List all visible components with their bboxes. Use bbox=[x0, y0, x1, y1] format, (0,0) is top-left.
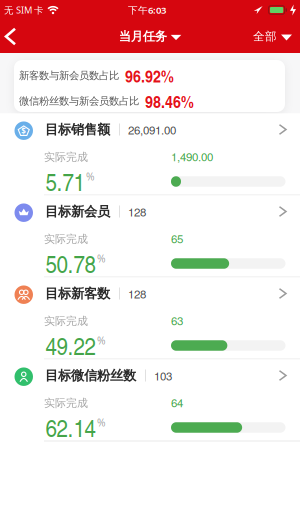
staticText: 实际完成 bbox=[44, 232, 88, 246]
staticText: 128 bbox=[128, 285, 146, 302]
staticText: 63 bbox=[171, 312, 183, 329]
staticText: 5.71 bbox=[45, 163, 84, 198]
staticText: 50.78 bbox=[45, 245, 95, 280]
staticText: 62.14 bbox=[45, 409, 95, 444]
staticText: 目标新客数 bbox=[45, 285, 110, 302]
staticText: 1,490.00 bbox=[171, 148, 213, 165]
staticText: 实际完成 bbox=[44, 314, 88, 328]
staticText: 实际完成 bbox=[44, 150, 88, 164]
staticText: 当月任务 bbox=[119, 29, 167, 44]
button[interactable]: $ bbox=[0, 113, 300, 195]
button[interactable]: 目标微信粉丝数 bbox=[0, 359, 300, 441]
staticText: 目标新会员 bbox=[45, 203, 110, 220]
staticText: 目标微信粉丝数 bbox=[45, 367, 136, 384]
staticText: 无 SIM 卡 bbox=[4, 4, 43, 16]
staticText: 64 bbox=[171, 394, 183, 411]
staticText: 微信粉丝数与新会员数占比 bbox=[19, 94, 139, 107]
staticText: 128 bbox=[128, 203, 146, 220]
button[interactable]: 全部 bbox=[253, 23, 300, 50]
staticText: 103 bbox=[154, 367, 172, 384]
button[interactable]: 目标新客数 bbox=[0, 277, 300, 359]
staticText: % bbox=[86, 169, 95, 183]
staticText: 下午6:03 bbox=[128, 3, 166, 17]
staticText: % bbox=[97, 251, 106, 265]
button[interactable]: 当月任务 bbox=[119, 29, 181, 44]
staticText: % bbox=[97, 333, 106, 347]
staticText: 96.92% bbox=[125, 63, 174, 88]
staticText: 98.46% bbox=[145, 89, 194, 113]
staticText: 新客数与新会员数占比 bbox=[19, 69, 119, 82]
staticText: 49.22 bbox=[45, 327, 95, 362]
staticText: % bbox=[97, 415, 106, 429]
staticText: 全部 bbox=[253, 29, 277, 44]
staticText: 目标销售额 bbox=[45, 121, 110, 138]
staticText: $ bbox=[21, 126, 26, 137]
button[interactable]: Back bbox=[0, 21, 25, 52]
staticText: 65 bbox=[171, 230, 183, 247]
staticText: 26,091.00 bbox=[128, 121, 176, 138]
button[interactable]: 目标新会员 bbox=[0, 195, 300, 277]
staticText: 实际完成 bbox=[44, 396, 88, 410]
